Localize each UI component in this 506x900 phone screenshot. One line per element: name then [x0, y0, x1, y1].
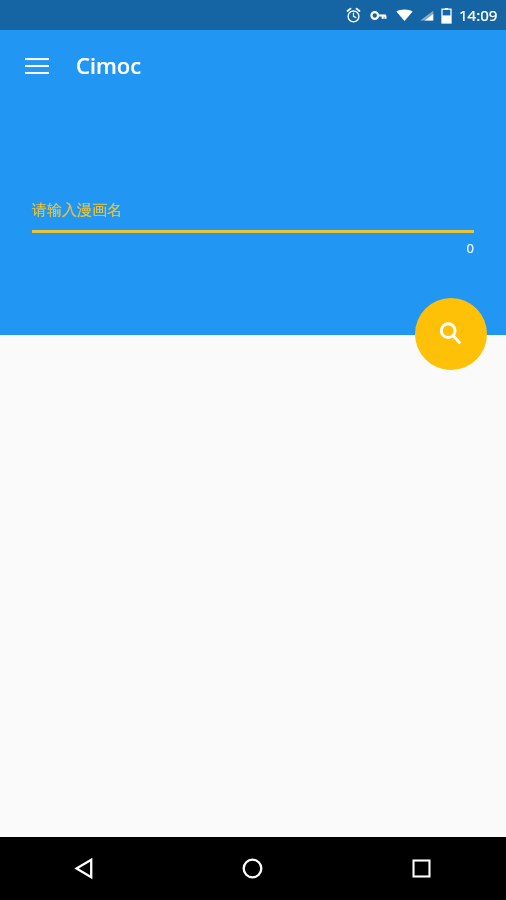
staticText: 请输入漫画名 [32, 201, 122, 220]
staticText: 0 [32, 239, 474, 257]
button[interactable]: 请输入漫画名 [32, 178, 474, 230]
button[interactable]: Open navigation menu [13, 41, 61, 89]
button[interactable]: Back [0, 837, 168, 900]
button[interactable]: Home [168, 837, 337, 900]
staticText: 14:09 [459, 5, 498, 25]
staticText: Cimoc [76, 50, 141, 80]
button[interactable]: Search [415, 298, 487, 370]
button[interactable]: Recent apps [337, 837, 506, 900]
